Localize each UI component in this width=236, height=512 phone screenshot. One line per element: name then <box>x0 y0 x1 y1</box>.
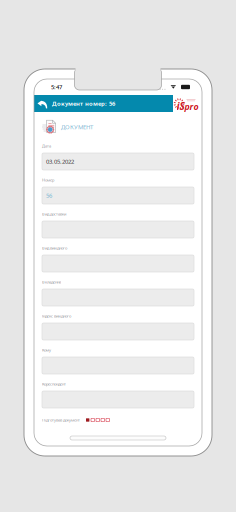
staticText: Документ номер: 56 <box>52 99 115 107</box>
button[interactable]: Індекс вихідного <box>42 313 194 340</box>
button[interactable]: Документ номер: 56 <box>34 95 173 112</box>
staticText: Підготував документ <box>42 417 80 423</box>
button[interactable]: Кому <box>42 347 194 374</box>
staticText: Вид доставки <box>42 211 66 217</box>
staticText: Дата <box>42 143 51 149</box>
staticText: Вкладення <box>42 279 61 285</box>
button[interactable]: Вкладення <box>42 279 194 306</box>
button[interactable]: Вид доставки <box>42 211 194 238</box>
staticText: pro <box>184 101 198 113</box>
staticText: Індекс вихідного <box>42 313 71 319</box>
staticText: 03.05.2022 <box>46 157 74 165</box>
staticText: Номер <box>42 177 54 183</box>
button[interactable]: Дата <box>42 143 194 170</box>
staticText: Кому <box>42 347 51 353</box>
staticText: Вид вихідного <box>42 245 67 251</box>
staticText: iS <box>176 99 184 113</box>
button[interactable]: Вид вихідного <box>42 245 194 272</box>
staticText: ДОКУМЕНТ <box>61 123 93 131</box>
button[interactable]: Кореспондент <box>42 381 194 408</box>
staticText: 56 <box>46 191 52 199</box>
button[interactable]: iSpro <box>173 95 202 112</box>
staticText: 5:47 <box>51 83 62 91</box>
button[interactable]: Номер <box>42 177 194 204</box>
staticText: Кореспондент <box>42 381 66 387</box>
